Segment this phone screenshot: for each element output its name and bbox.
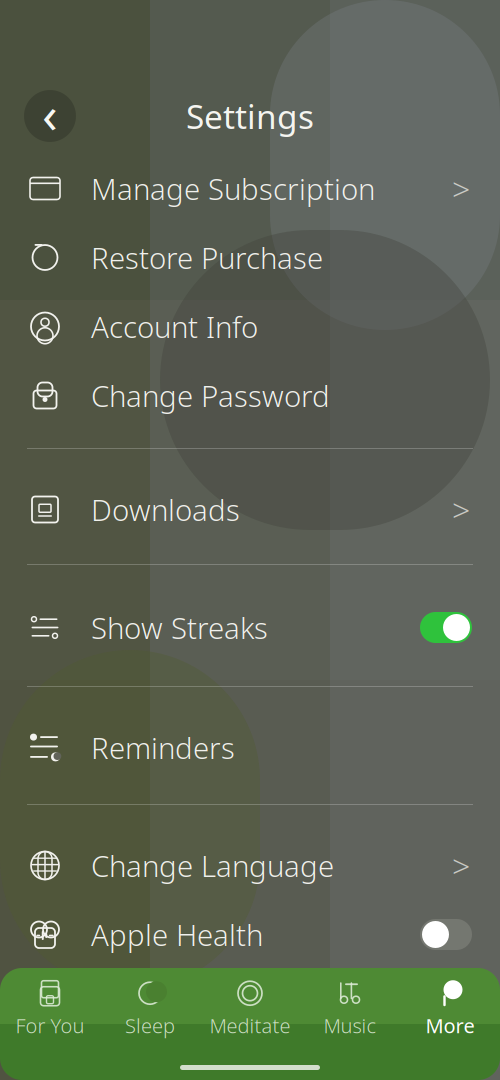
staticText: Show Streaks xyxy=(91,608,268,647)
button[interactable]: Sleep xyxy=(100,978,200,1040)
staticText: Change Language xyxy=(91,846,334,885)
staticText: Sleep xyxy=(125,1012,175,1039)
button[interactable]: Change Language xyxy=(0,831,500,900)
staticText: For You xyxy=(15,1012,84,1039)
staticText: > xyxy=(452,167,470,210)
button[interactable]: Music xyxy=(300,978,400,1040)
button[interactable]: Account Info xyxy=(0,292,500,361)
staticText: Apple Health xyxy=(91,915,263,954)
staticText: Reminders xyxy=(91,728,235,767)
staticText: Meditate xyxy=(209,1012,290,1039)
staticText: Music xyxy=(323,1012,376,1039)
button[interactable]: Downloads xyxy=(0,475,500,544)
button[interactable]: Manage Subscription xyxy=(0,154,500,223)
staticText: Downloads xyxy=(91,490,240,529)
staticText: > xyxy=(452,488,470,531)
staticText: Restore Purchase xyxy=(91,238,323,277)
button[interactable]: Restore Purchase xyxy=(0,223,500,292)
staticText: > xyxy=(452,844,470,887)
button[interactable]: Show Streaks xyxy=(0,593,500,662)
button[interactable]: Back xyxy=(22,88,78,144)
staticText: Manage Subscription xyxy=(91,169,375,208)
button[interactable]: More xyxy=(400,978,500,1040)
button[interactable]: Change Password xyxy=(0,361,500,430)
staticText: More xyxy=(425,1012,474,1039)
button[interactable]: Meditate xyxy=(200,978,300,1040)
staticText: Settings xyxy=(186,94,314,138)
staticText: ‹ xyxy=(42,80,58,147)
button[interactable]: For You xyxy=(0,978,100,1040)
staticText: Account Info xyxy=(91,307,258,346)
button[interactable]: Reminders xyxy=(0,713,500,782)
button[interactable]: Apple Health xyxy=(0,900,500,969)
staticText: Change Password xyxy=(91,376,330,415)
